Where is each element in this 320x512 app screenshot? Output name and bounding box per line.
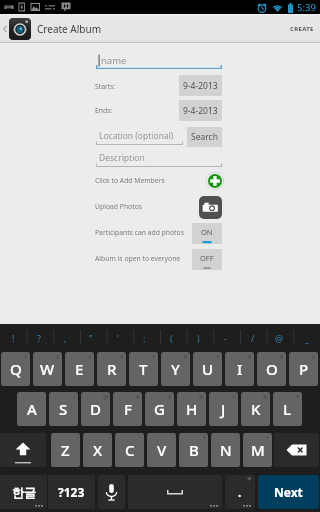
button[interactable]: - — [212, 324, 239, 351]
staticText: Album is open to everyone — [95, 254, 181, 263]
staticText: ! — [74, 393, 76, 400]
button[interactable]: G — [145, 392, 174, 426]
button[interactable]: L — [273, 392, 302, 426]
staticText: U — [202, 359, 214, 379]
staticText: 5 — [152, 353, 156, 360]
staticText: I — [237, 359, 243, 379]
staticText: S — [59, 399, 68, 419]
button[interactable]: Album is open to everyone — [95, 254, 181, 263]
button[interactable]: O — [257, 352, 286, 386]
other: bs — [274, 433, 319, 467]
button[interactable]: _ — [293, 324, 320, 351]
staticText: M — [251, 440, 265, 460]
button[interactable]: space — [128, 475, 222, 509]
button[interactable]: 9-4-2013 — [179, 75, 222, 96]
button[interactable]: D — [81, 392, 110, 426]
staticText: ( — [170, 332, 173, 344]
button[interactable]: : — [131, 324, 158, 351]
button[interactable]: N — [211, 433, 240, 467]
button[interactable]: I — [225, 352, 254, 386]
staticText: # — [136, 393, 140, 400]
staticText: 9-4-2013 — [183, 80, 218, 92]
button[interactable]: Z — [51, 433, 80, 467]
button[interactable]: Location (optional) — [96, 128, 183, 145]
staticText: 4 — [120, 353, 124, 360]
button[interactable]: mic — [98, 475, 125, 509]
button[interactable]: ! — [0, 324, 26, 351]
staticText: ON — [201, 227, 213, 237]
button[interactable]: A — [17, 392, 46, 426]
staticText: B — [189, 440, 199, 460]
button[interactable]: Q — [1, 352, 30, 386]
button[interactable]: Y — [161, 352, 190, 386]
staticText: OFF — [200, 253, 214, 263]
button[interactable]: Add members — [206, 172, 224, 190]
button[interactable]: E — [65, 352, 94, 386]
staticText: X — [93, 440, 103, 460]
button[interactable]: B — [179, 433, 208, 467]
staticText: P — [299, 359, 309, 379]
button[interactable]: / — [239, 324, 266, 351]
button[interactable]: name — [96, 52, 222, 69]
button[interactable]: Participants can add photos — [95, 228, 184, 237]
button[interactable]: CREATE — [284, 25, 320, 33]
button[interactable]: Upload photos — [199, 196, 222, 219]
button[interactable]: Click to Add Members — [95, 176, 165, 185]
staticText: Description — [99, 152, 145, 164]
button[interactable]: ( — [158, 324, 185, 351]
button[interactable]: F — [113, 392, 142, 426]
staticText: ^ — [232, 393, 236, 400]
staticText: - — [236, 434, 238, 441]
staticText: F — [124, 399, 132, 419]
staticText: E — [75, 359, 84, 379]
staticText: ” — [89, 332, 93, 344]
button[interactable]: . — [225, 475, 255, 509]
button[interactable]: shift — [0, 433, 46, 467]
button[interactable]: ? — [26, 324, 52, 351]
button[interactable]: OFF — [192, 249, 222, 270]
staticText: Y — [171, 359, 180, 379]
button[interactable]: ) — [185, 324, 212, 351]
button[interactable]: U — [193, 352, 222, 386]
staticText: @ — [275, 332, 284, 344]
button[interactable]: 한글 — [0, 475, 47, 509]
staticText: G — [154, 399, 165, 419]
button[interactable]: Upload Photos — [95, 202, 143, 211]
staticText: A — [27, 399, 37, 419]
button[interactable]: Next — [258, 475, 319, 509]
button[interactable]: , — [52, 324, 78, 351]
button[interactable]: K — [241, 392, 270, 426]
button[interactable]: V — [147, 433, 176, 467]
button[interactable]: Back — [0, 14, 320, 43]
button[interactable]: ” — [78, 324, 104, 351]
button[interactable]: Description — [96, 150, 222, 167]
staticText: 9-4-2013 — [183, 105, 218, 117]
staticText: ’ — [117, 332, 119, 344]
staticText: 6 — [184, 353, 188, 360]
button[interactable]: S — [49, 392, 78, 426]
button[interactable]: H — [177, 392, 206, 426]
button[interactable]: P — [289, 352, 318, 386]
staticText: + — [266, 434, 270, 441]
button[interactable]: M — [243, 433, 272, 467]
staticText: @ — [103, 393, 108, 400]
button[interactable]: Search — [187, 127, 222, 147]
staticText: ! — [12, 332, 15, 344]
staticText: V — [157, 440, 167, 460]
button[interactable]: R — [97, 352, 126, 386]
button[interactable]: @ — [266, 324, 293, 351]
button[interactable]: 9-4-2013 — [179, 100, 222, 121]
button[interactable]: W — [33, 352, 62, 386]
button[interactable]: ON — [192, 223, 222, 244]
button[interactable]: ?123 — [48, 475, 95, 509]
button[interactable]: X — [83, 433, 112, 467]
button[interactable]: C — [115, 433, 144, 467]
button[interactable]: T — [129, 352, 158, 386]
button[interactable]: J — [209, 392, 238, 426]
staticText: T — [139, 359, 148, 379]
staticText: . — [238, 484, 242, 500]
button[interactable]: bs — [274, 433, 319, 467]
staticText: 1 — [24, 353, 28, 360]
button[interactable]: ’ — [104, 324, 131, 351]
staticText: C — [125, 440, 135, 460]
